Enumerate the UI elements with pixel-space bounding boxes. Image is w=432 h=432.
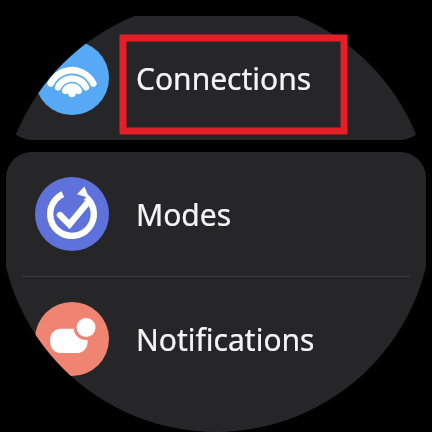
other: Modes [35,177,109,251]
other: Notifications [35,302,109,376]
other: Connections [35,41,109,115]
staticText: Modes [136,194,232,235]
staticText: Notifications [136,319,315,360]
button[interactable]: Notifications [6,277,426,401]
staticText: Connections [136,58,312,99]
button[interactable]: Connections [6,16,426,140]
button[interactable]: Modes [6,152,426,276]
